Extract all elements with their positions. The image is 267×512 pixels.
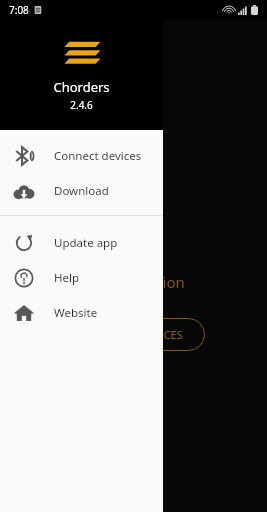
button[interactable]: Update app: [0, 225, 163, 260]
staticText: CONNECT DEVICES: [84, 327, 183, 342]
other: Download: [12, 179, 36, 203]
staticText: Update app: [54, 235, 118, 251]
staticText: Download: [54, 183, 109, 199]
staticText: 7:08: [9, 3, 29, 17]
button[interactable]: Website: [0, 295, 163, 330]
button[interactable]: Connect devices: [0, 138, 163, 173]
staticText: Help: [54, 270, 80, 286]
staticText: Chorders: [53, 78, 110, 96]
other: Update app: [12, 231, 36, 255]
staticText: 2.4.6: [70, 98, 93, 112]
button[interactable]: Help: [0, 260, 163, 295]
other: Website: [12, 301, 36, 325]
staticText: Website: [54, 305, 98, 321]
staticText: Connect devices: [54, 148, 142, 164]
button[interactable]: Download: [0, 173, 163, 208]
other: Connect devices: [12, 144, 36, 168]
staticText: No connection: [82, 272, 185, 292]
other: Help: [12, 266, 36, 290]
button[interactable]: CONNECT DEVICES: [62, 318, 205, 351]
